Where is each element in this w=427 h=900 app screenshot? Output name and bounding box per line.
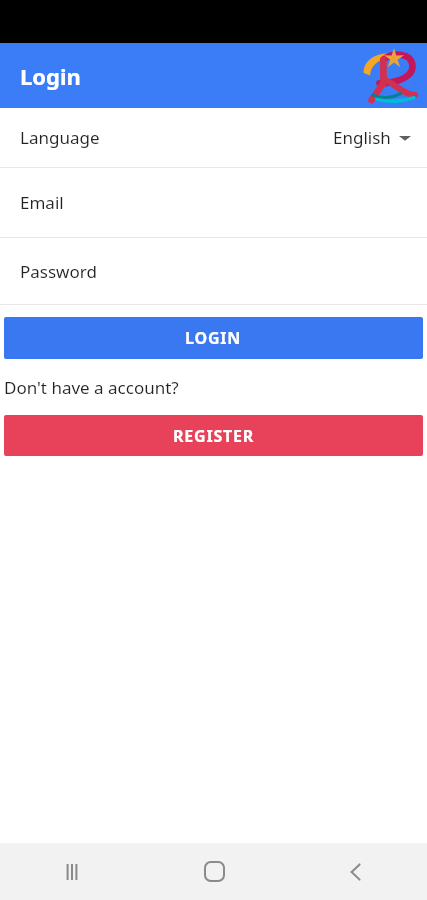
button[interactable]: Home: [143, 843, 285, 900]
staticText: Email: [20, 191, 64, 214]
button[interactable]: Password: [0, 238, 427, 304]
staticText: English: [333, 126, 391, 149]
staticText: Login: [20, 61, 81, 91]
button[interactable]: Recent apps: [0, 843, 143, 900]
staticText: LOGIN: [185, 327, 242, 349]
staticText: Language: [20, 126, 100, 149]
staticText: Don't have a account?: [4, 376, 179, 399]
button[interactable]: LOGIN: [4, 317, 423, 359]
button[interactable]: Back: [285, 843, 427, 900]
other: App logo: [357, 43, 423, 108]
staticText: REGISTER: [173, 425, 255, 447]
button[interactable]: Language: [0, 108, 427, 167]
staticText: Password: [20, 260, 97, 283]
button[interactable]: REGISTER: [4, 415, 423, 456]
button[interactable]: Email: [0, 168, 427, 237]
